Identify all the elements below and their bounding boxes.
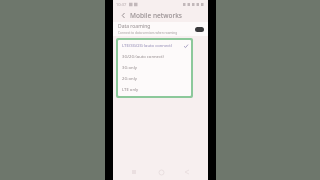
staticText: 2G only xyxy=(122,76,137,82)
staticText: Connect to data services when roaming xyxy=(118,31,178,35)
button[interactable]: Back xyxy=(118,10,128,20)
staticText: 3G only xyxy=(122,65,137,71)
staticText: LTE only xyxy=(122,87,139,93)
staticText: Data roaming xyxy=(118,23,151,30)
staticText: LTE/3G/2G (auto connect) xyxy=(122,43,173,49)
button[interactable]: LTE only xyxy=(118,84,191,95)
staticText: Mobile networks xyxy=(130,11,182,20)
button[interactable]: Data roaming toggle xyxy=(195,27,204,32)
button[interactable]: 3G/2G (auto connect) xyxy=(118,51,191,62)
button[interactable]: Home xyxy=(156,167,166,177)
button[interactable]: LTE/3G/2G (auto connect) xyxy=(118,40,191,51)
button[interactable]: 2G only xyxy=(118,73,191,84)
button[interactable]: Data roaming xyxy=(113,22,208,36)
staticText: 10:37 xyxy=(116,2,127,7)
button[interactable]: Back xyxy=(182,167,192,177)
staticText: 3G/2G (auto connect) xyxy=(122,54,164,60)
button[interactable]: 3G only xyxy=(118,62,191,73)
button[interactable]: Recents xyxy=(129,167,139,177)
